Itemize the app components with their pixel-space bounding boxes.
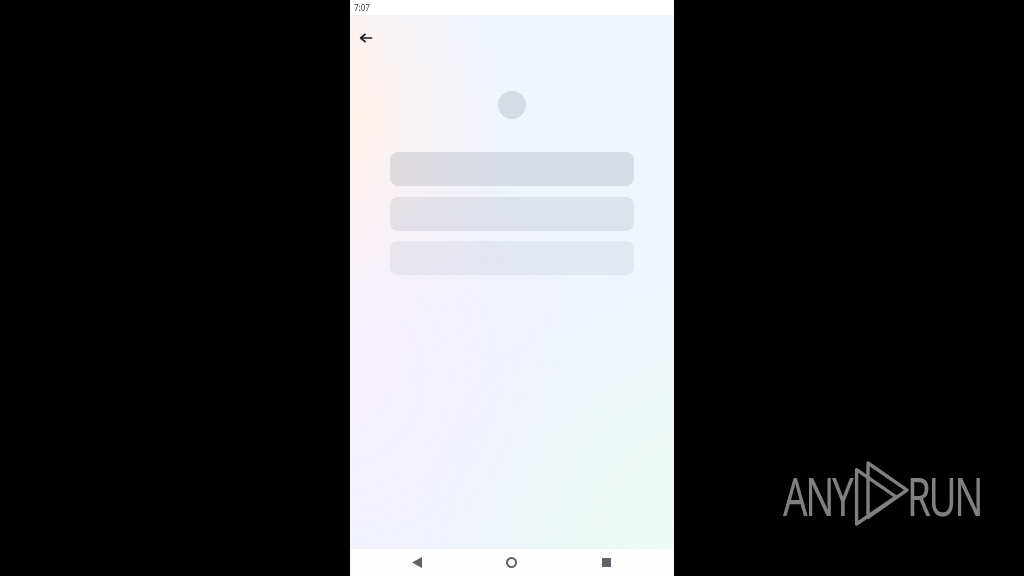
button[interactable]: Back <box>370 549 464 576</box>
staticText: 7:07 <box>354 2 370 13</box>
button[interactable]: Back <box>352 24 380 52</box>
staticText: ANY <box>783 460 852 531</box>
button[interactable]: Recents <box>559 549 654 576</box>
button[interactable]: Home <box>464 549 559 576</box>
staticText: RUN <box>907 460 982 531</box>
